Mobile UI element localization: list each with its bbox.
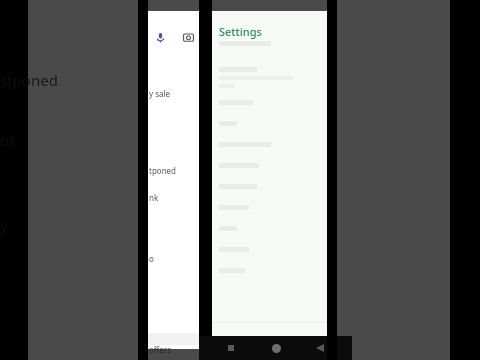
staticText: nk [149,192,159,203]
button[interactable] [212,120,327,127]
button[interactable] [212,204,327,211]
button[interactable]: Settings [219,24,262,39]
button[interactable]: Recent apps [219,336,243,360]
button[interactable]: Back [308,336,332,360]
button[interactable] [212,162,327,169]
staticText: Settings [219,24,262,39]
button[interactable] [212,246,327,253]
button[interactable] [212,66,327,89]
staticText: y [0,215,8,235]
staticText: offers [149,344,171,355]
button[interactable] [212,225,327,232]
button[interactable] [212,183,327,190]
button[interactable]: Voice search [150,27,170,47]
button[interactable] [212,267,327,274]
staticText: y sale [149,88,171,99]
staticText: nk [0,130,18,150]
button[interactable] [212,99,327,106]
staticText: tponed [149,165,177,176]
button[interactable] [212,141,327,148]
staticText: o [149,253,154,264]
button[interactable]: Home [264,336,288,360]
button[interactable]: Google Lens [178,27,198,47]
staticText: stponed [0,70,58,90]
